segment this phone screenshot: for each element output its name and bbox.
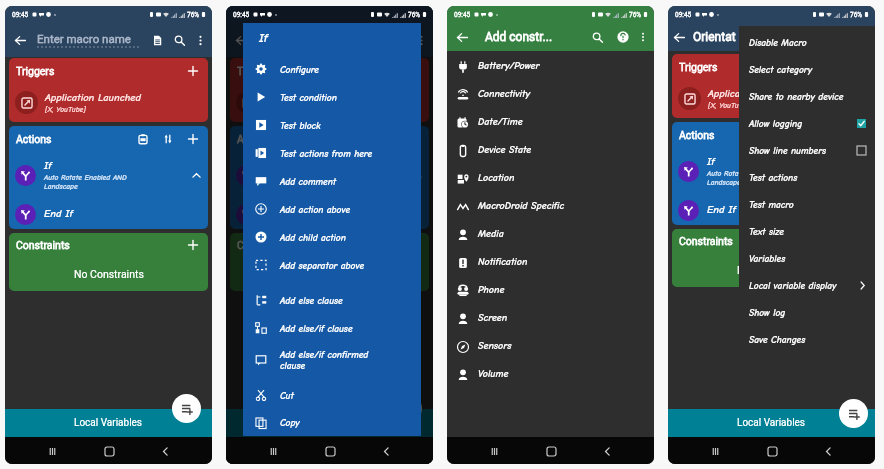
button[interactable]: Show log: [739, 299, 875, 326]
button[interactable]: Triggers: [9, 58, 208, 122]
button[interactable]: Add constraint: [406, 237, 422, 253]
button[interactable]: Cut: [243, 381, 421, 409]
staticText: Enter macro name: [37, 32, 131, 45]
staticText: No Constraints: [74, 268, 144, 280]
button[interactable]: MacroDroid Specific: [447, 192, 654, 220]
button[interactable]: Select category: [739, 56, 875, 83]
button[interactable]: Screen: [447, 304, 654, 332]
button[interactable]: Back: [597, 441, 617, 461]
staticText: Triggers: [237, 65, 276, 77]
button[interactable]: Add action: [848, 127, 864, 143]
button[interactable]: Disable Macro: [739, 29, 875, 56]
button[interactable]: Show line numbers: [739, 137, 875, 164]
button[interactable]: Add child action: [243, 223, 421, 251]
button[interactable]: Add comment: [243, 167, 421, 195]
button[interactable]: Notes: [146, 29, 168, 51]
button[interactable]: Battery/Power: [447, 52, 654, 80]
button[interactable]: Search: [587, 27, 607, 47]
button[interactable]: Date/Time: [447, 108, 654, 136]
button[interactable]: Search: [168, 29, 190, 51]
button[interactable]: Help: [613, 27, 633, 47]
button[interactable]: Test actions: [739, 164, 875, 191]
button[interactable]: Constraints: [230, 233, 429, 291]
button[interactable]: Home: [541, 441, 561, 461]
button[interactable]: Volume: [447, 360, 654, 388]
button[interactable]: Save Changes: [739, 326, 875, 353]
button[interactable]: Add local variable: [393, 394, 422, 423]
button[interactable]: Test actions from here: [243, 139, 421, 167]
button[interactable]: Add constraint: [185, 237, 201, 253]
button[interactable]: Share to nearby device: [739, 83, 875, 110]
button[interactable]: Add trigger: [406, 63, 422, 79]
button[interactable]: Actions: [672, 122, 871, 225]
button[interactable]: Actions: [230, 126, 429, 229]
button[interactable]: Back: [451, 26, 473, 48]
button[interactable]: Home: [99, 441, 119, 461]
button[interactable]: Back: [668, 26, 690, 48]
button[interactable]: Constraints: [9, 233, 208, 291]
button[interactable]: Add else/if clause: [243, 314, 421, 342]
button[interactable]: Triggers: [230, 58, 429, 122]
button[interactable]: Actions: [9, 126, 208, 229]
button[interactable]: Paste: [135, 131, 151, 147]
button[interactable]: Home: [320, 441, 340, 461]
button[interactable]: Back: [818, 441, 838, 461]
button[interactable]: More options: [411, 30, 431, 50]
button[interactable]: Add action above: [243, 195, 421, 223]
button[interactable]: Allow logging: [739, 110, 875, 137]
button[interactable]: Recents: [263, 441, 283, 461]
button[interactable]: Add separator above: [243, 251, 421, 279]
button[interactable]: Recents: [705, 441, 725, 461]
button[interactable]: Add else clause: [243, 286, 421, 314]
button[interactable]: Add else/if confirmed clause: [243, 342, 421, 377]
button[interactable]: Add local variable: [172, 394, 201, 423]
button[interactable]: Add action: [406, 131, 422, 147]
button[interactable]: Variables: [739, 245, 875, 272]
button[interactable]: Triggers: [672, 54, 871, 118]
button[interactable]: Local Variables: [226, 409, 433, 437]
button[interactable]: Back: [230, 29, 252, 51]
staticText: Save Changes: [749, 334, 866, 345]
button[interactable]: Add trigger: [185, 63, 201, 79]
button[interactable]: Back: [376, 441, 396, 461]
button[interactable]: Local Variables: [5, 409, 212, 437]
button[interactable]: Device State: [447, 136, 654, 164]
button[interactable]: Notification: [447, 248, 654, 276]
button[interactable]: More options: [190, 30, 210, 50]
button[interactable]: Recents: [42, 441, 62, 461]
button[interactable]: Text size: [739, 218, 875, 245]
button[interactable]: Paste: [798, 127, 814, 143]
button[interactable]: Test condition: [243, 83, 421, 111]
button[interactable]: Add action: [185, 131, 201, 147]
button[interactable]: Add local variable: [839, 399, 868, 428]
button[interactable]: Constraints: [672, 229, 871, 287]
button[interactable]: Media: [447, 220, 654, 248]
button[interactable]: Recents: [263, 441, 283, 461]
button[interactable]: Phone: [447, 276, 654, 304]
button[interactable]: Configure: [243, 55, 421, 83]
button[interactable]: More options: [635, 29, 651, 45]
button[interactable]: Home: [762, 441, 782, 461]
button[interactable]: Test macro: [739, 191, 875, 218]
button[interactable]: Reorder: [160, 131, 176, 147]
button[interactable]: Back: [376, 441, 396, 461]
button[interactable]: Test block: [243, 111, 421, 139]
button[interactable]: Location: [447, 164, 654, 192]
button[interactable]: Sensors: [447, 332, 654, 360]
button[interactable]: Local variable display: [739, 272, 875, 299]
button[interactable]: Recents: [484, 441, 504, 461]
button[interactable]: Copy: [243, 409, 421, 436]
button[interactable]: Connectivity: [447, 80, 654, 108]
button[interactable]: Local Variables: [668, 409, 875, 437]
button[interactable]: Back: [155, 441, 175, 461]
staticText: Show line numbers: [749, 145, 857, 156]
button[interactable]: Back: [9, 29, 31, 51]
button[interactable]: Home: [320, 441, 340, 461]
